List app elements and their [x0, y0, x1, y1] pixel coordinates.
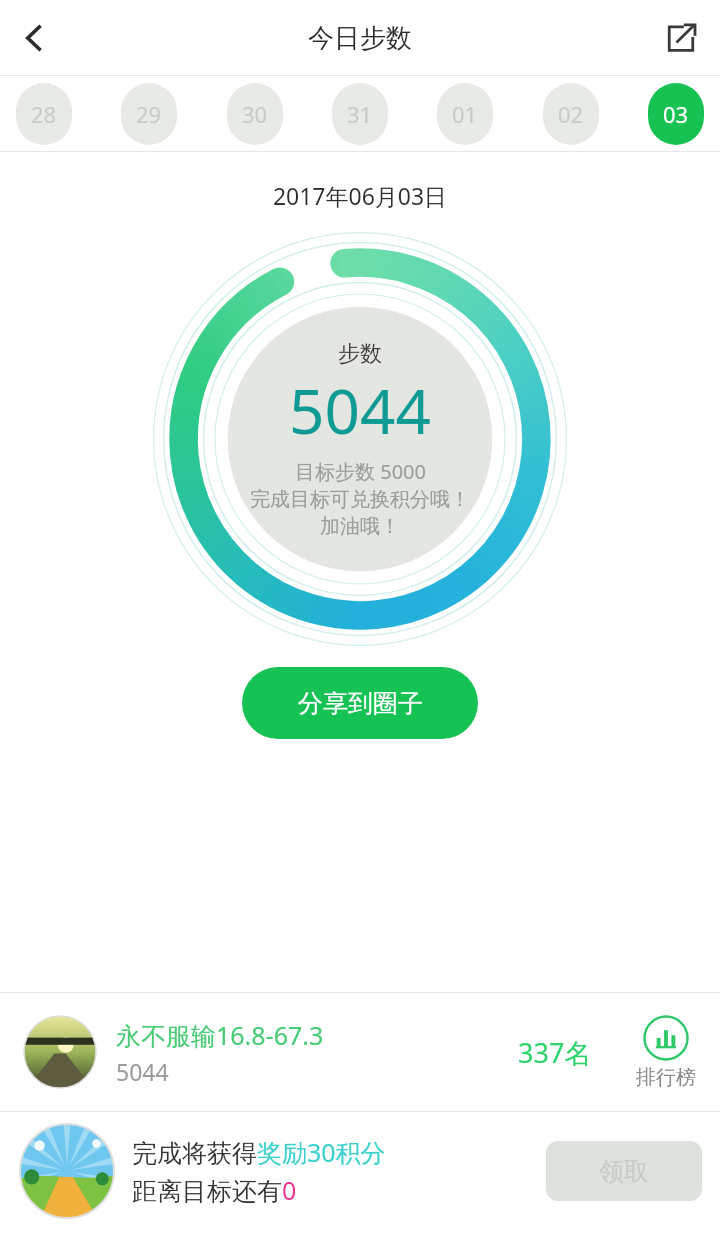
button[interactable]: 30: [227, 83, 283, 145]
staticText: 28: [31, 99, 57, 129]
staticText: 加油哦！: [320, 514, 400, 539]
staticText: 03: [663, 99, 689, 129]
button[interactable]: Share: [652, 9, 710, 67]
button[interactable]: 排行榜: [636, 1015, 696, 1090]
button[interactable]: 01: [437, 83, 493, 145]
staticText: 领取: [599, 1156, 649, 1187]
staticText: 分享到圈子: [298, 688, 423, 719]
button[interactable]: 02: [543, 83, 599, 145]
button[interactable]: 分享到圈子: [242, 667, 478, 739]
staticText: 完成将获得奖励30积分: [132, 1135, 386, 1169]
staticText: 31: [347, 99, 373, 129]
staticText: 02: [558, 99, 584, 129]
staticText: 5044: [289, 368, 431, 452]
staticText: 30: [242, 99, 268, 129]
button[interactable]: 29: [121, 83, 177, 145]
button[interactable]: Back: [4, 7, 66, 69]
staticText: 距离目标还有0: [132, 1173, 297, 1207]
staticText: 29: [136, 99, 162, 129]
staticText: 排行榜: [636, 1065, 696, 1090]
button[interactable]: 03: [648, 83, 704, 145]
button[interactable]: 永不服输16.8-67.3: [0, 993, 720, 1111]
staticText: 2017年06月03日: [0, 180, 720, 211]
button[interactable]: 28: [16, 83, 72, 145]
staticText: 今日步数: [308, 22, 412, 55]
staticText: 完成目标可兑换积分哦！: [250, 487, 470, 512]
staticText: 01: [452, 99, 478, 129]
button[interactable]: 领取: [546, 1141, 702, 1201]
staticText: 永不服输16.8-67.3: [116, 1018, 324, 1052]
staticText: 目标步数 5000: [295, 458, 426, 485]
staticText: 337名: [518, 1034, 592, 1071]
button[interactable]: 31: [332, 83, 388, 145]
staticText: 步数: [338, 340, 382, 368]
staticText: 5044: [116, 1056, 169, 1087]
